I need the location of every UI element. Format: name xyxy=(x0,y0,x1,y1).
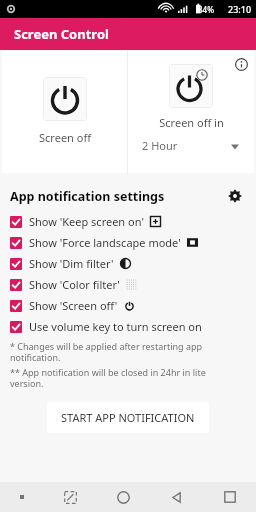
button[interactable]: Home xyxy=(97,482,150,512)
staticText: Use volume key to turn screen on xyxy=(29,319,202,334)
staticText: App notification settings xyxy=(10,188,165,205)
staticText: START APP NOTIFICATION xyxy=(61,410,195,425)
staticText: ** App notification will be closed in 24… xyxy=(10,366,206,390)
staticText: Screen off xyxy=(39,130,91,145)
button[interactable]: Screen off xyxy=(2,51,127,173)
button[interactable]: Hide xyxy=(0,482,44,512)
staticText: Show 'Color filter' xyxy=(29,277,120,292)
button[interactable]: Show 'Dim filter' xyxy=(10,253,246,274)
button[interactable]: Show 'Force landscape mode' xyxy=(10,232,246,253)
button[interactable]: Show 'Color filter' xyxy=(10,274,246,295)
staticText: Show 'Keep screen on' xyxy=(29,214,144,229)
button[interactable]: Show 'Keep screen on' xyxy=(10,211,246,232)
button[interactable]: Use volume key to turn screen on xyxy=(10,316,246,337)
staticText: 2 Hour xyxy=(142,138,178,153)
staticText: Screen Control xyxy=(14,25,109,43)
staticText: Screen off in xyxy=(159,115,224,130)
button[interactable]: Settings xyxy=(224,185,246,207)
staticText: Show 'Screen off' xyxy=(29,298,118,313)
button[interactable]: Back xyxy=(150,482,203,512)
staticText: Show 'Force landscape mode' xyxy=(29,235,181,250)
button[interactable]: Recents xyxy=(203,482,256,512)
button[interactable]: 2 Hour xyxy=(142,138,240,153)
staticText: 23:10 xyxy=(228,3,252,15)
button[interactable]: START APP NOTIFICATION xyxy=(47,402,209,433)
button[interactable]: Show 'Screen off' xyxy=(10,295,246,316)
staticText: * Changes will be applied after restarti… xyxy=(10,340,203,364)
button[interactable]: Screenshot xyxy=(44,482,97,512)
button[interactable]: Info xyxy=(232,55,250,73)
button[interactable]: Screen off timer xyxy=(169,64,213,108)
staticText: 84% xyxy=(198,4,214,15)
staticText: Show 'Dim filter' xyxy=(29,256,114,271)
